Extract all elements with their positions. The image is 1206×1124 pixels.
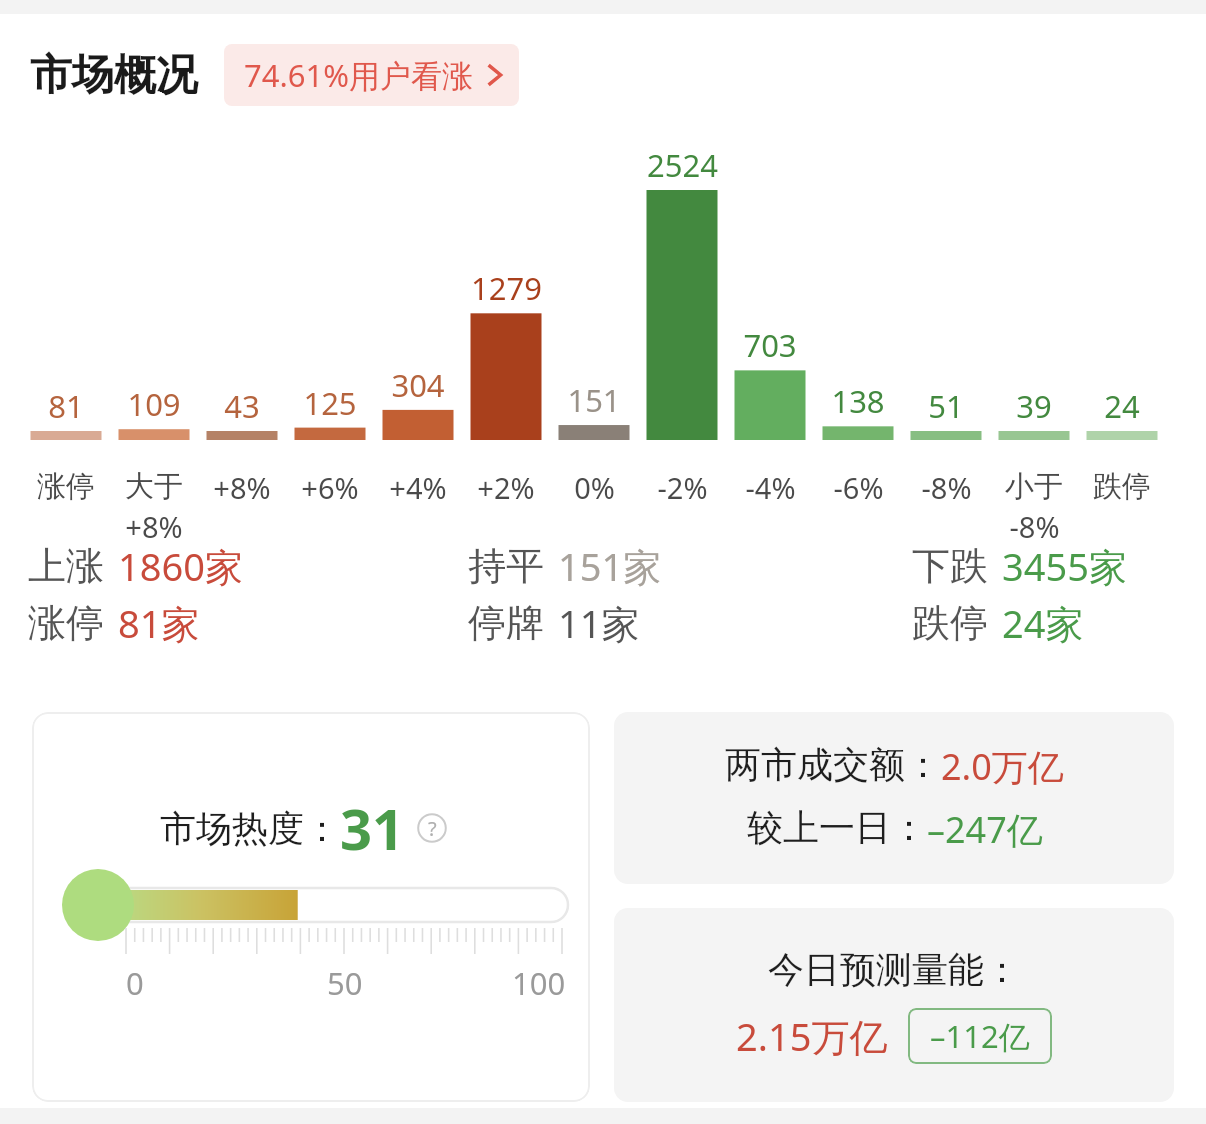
staticText: -4%: [745, 468, 796, 507]
staticText: –112亿: [930, 1015, 1030, 1057]
staticText: -8%: [921, 468, 972, 507]
staticText: 151: [567, 379, 621, 421]
staticText: 2.0万亿: [941, 742, 1064, 791]
staticText: 109: [127, 383, 181, 425]
staticText: 小于: [1005, 468, 1063, 505]
staticText: 138: [831, 380, 885, 422]
staticText: 24家: [1002, 597, 1084, 649]
staticText: 0%: [574, 468, 615, 507]
staticText: 81家: [118, 597, 200, 649]
staticText: +2%: [477, 468, 535, 507]
staticText: 今日预测量能：: [768, 947, 1020, 992]
staticText: 大于: [125, 468, 183, 505]
staticText: 24: [1104, 385, 1140, 427]
staticText: 涨停: [28, 599, 104, 647]
button[interactable]: 74.61%用户看涨: [224, 44, 519, 106]
staticText: +6%: [301, 468, 359, 507]
staticText: 125: [303, 382, 357, 424]
staticText: 上涨: [28, 542, 104, 590]
staticText: 0: [126, 962, 144, 1004]
staticText: -6%: [833, 468, 884, 507]
staticText: 跌停: [1093, 468, 1151, 505]
staticText: 较上一日：: [747, 805, 927, 850]
staticText: 51: [928, 385, 964, 427]
button[interactable]: 今日预测量能：: [614, 908, 1174, 1102]
staticText: 81: [48, 385, 84, 427]
staticText: 100: [512, 962, 566, 1004]
button[interactable]: 市场热度：: [32, 712, 590, 1102]
staticText: 停牌: [468, 599, 544, 647]
staticText: 2.15万亿: [736, 1010, 888, 1062]
staticText: 50: [327, 962, 363, 1004]
staticText: 151家: [558, 540, 662, 592]
staticText: 3455家: [1002, 540, 1127, 592]
staticText: 两市成交额：: [725, 742, 941, 787]
staticText: +8%: [125, 507, 183, 546]
staticText: ?: [428, 815, 437, 842]
staticText: 11家: [558, 597, 640, 649]
staticText: 市场概况: [30, 49, 198, 102]
staticText: –247亿: [927, 805, 1043, 854]
staticText: 1860家: [118, 540, 243, 592]
staticText: +8%: [213, 468, 271, 507]
staticText: 703: [743, 324, 797, 366]
button[interactable]: 市场热度说明: [417, 813, 447, 843]
staticText: 2524: [647, 144, 718, 186]
staticText: 74.61%用户看涨: [244, 54, 473, 96]
button[interactable]: 两市成交额：: [614, 712, 1174, 884]
staticText: 下跌: [912, 542, 988, 590]
staticText: 持平: [468, 542, 544, 590]
staticText: 市场热度：: [160, 806, 340, 851]
staticText: 39: [1016, 385, 1052, 427]
staticText: 1279: [471, 267, 542, 309]
staticText: -2%: [657, 468, 708, 507]
staticText: 304: [391, 364, 445, 406]
staticText: -8%: [1009, 507, 1060, 546]
staticText: 31: [340, 790, 405, 866]
staticText: +4%: [389, 468, 447, 507]
staticText: 涨停: [37, 468, 95, 505]
staticText: 43: [224, 385, 260, 427]
staticText: 跌停: [912, 599, 988, 647]
